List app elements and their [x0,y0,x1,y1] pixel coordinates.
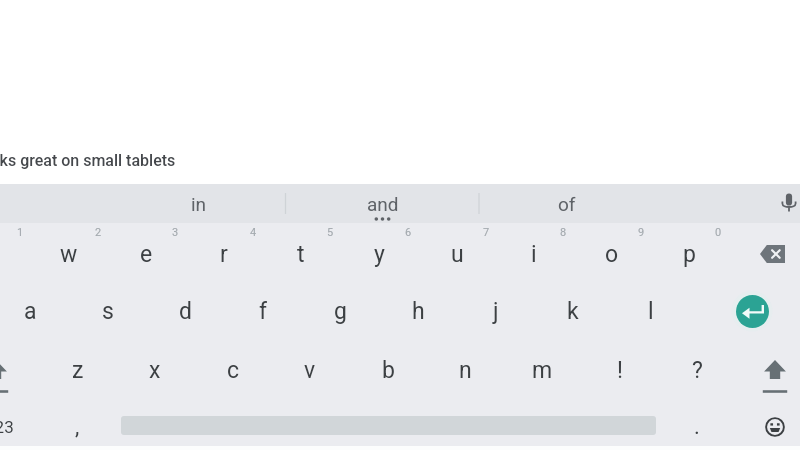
staticText: r [220,241,228,268]
staticText: k [567,298,579,325]
staticText: x [149,357,161,384]
staticText: Works great on small tablets [0,151,176,170]
staticText: s [102,298,114,325]
staticText: n [459,357,472,384]
staticText: 8 [560,226,567,239]
staticText: y [374,241,385,268]
button[interactable]: o [574,225,650,283]
staticText: z [72,357,84,384]
staticText: 5 [327,226,334,239]
staticText: m [532,357,553,384]
staticText: 3 [172,226,179,239]
staticText: ? [692,357,703,384]
button[interactable]: Emoji [743,398,800,450]
staticText: in [191,193,207,215]
staticText: v [304,357,316,384]
button[interactable]: Voice input [767,184,800,223]
staticText: h [412,298,425,325]
button[interactable]: ? [659,341,735,399]
button[interactable]: n [427,341,503,399]
button[interactable]: c [195,341,271,399]
staticText: j [493,298,499,325]
staticText: b [382,357,395,384]
button[interactable]: z [40,341,116,399]
button[interactable]: p [651,225,727,283]
staticText: t [297,241,305,268]
button[interactable]: f [225,282,301,340]
staticText: 4 [250,226,257,239]
button[interactable]: . [665,398,729,450]
staticText: d [179,298,192,325]
staticText: o [605,241,619,268]
button[interactable]: w [31,225,107,283]
button[interactable]: m [504,341,580,399]
staticText: , [75,414,80,440]
staticText: 2 [95,226,102,239]
staticText: 1 [17,226,24,239]
staticText: f [259,298,267,325]
staticText: ! [617,357,623,384]
staticText: p [683,241,696,268]
staticText: ?123 [0,417,14,437]
staticText: c [227,357,240,384]
staticText: w [60,241,78,268]
button[interactable]: ?123 [0,398,27,450]
button[interactable]: l [613,282,689,340]
button[interactable]: e [108,225,184,283]
staticText: e [140,241,153,268]
button[interactable]: of [479,184,655,223]
button[interactable]: q [0,225,29,283]
button[interactable]: j [458,282,534,340]
button[interactable]: a [0,282,68,340]
button[interactable]: t [263,225,339,283]
staticText: 6 [405,226,412,239]
staticText: u [451,241,464,268]
button[interactable]: , [45,398,109,450]
button[interactable]: in [111,184,287,223]
button[interactable]: Shift [743,348,800,406]
staticText: i [531,241,537,268]
button[interactable]: i [496,225,572,283]
button[interactable]: ! [582,341,658,399]
button[interactable]: s [70,282,146,340]
button[interactable]: b [350,341,426,399]
staticText: of [558,193,576,215]
staticText: . [694,414,700,440]
button[interactable]: Enter [720,282,784,340]
button[interactable]: Backspace [740,225,800,283]
button[interactable]: y [341,225,417,283]
staticText: 7 [483,226,490,239]
button[interactable]: h [380,282,456,340]
staticText: 9 [638,226,645,239]
button[interactable]: u [419,225,495,283]
button[interactable]: Shift [0,348,28,406]
staticText: a [24,298,37,325]
staticText: l [648,298,654,325]
button[interactable]: r [186,225,262,283]
button[interactable]: k [535,282,611,340]
staticText: 0 [715,226,722,239]
staticText: and [367,193,399,215]
button[interactable]: and [295,184,471,223]
button[interactable]: x [117,341,193,399]
button[interactable]: g [302,282,378,340]
button[interactable]: d [147,282,223,340]
button[interactable]: v [272,341,348,399]
staticText: g [334,298,347,325]
